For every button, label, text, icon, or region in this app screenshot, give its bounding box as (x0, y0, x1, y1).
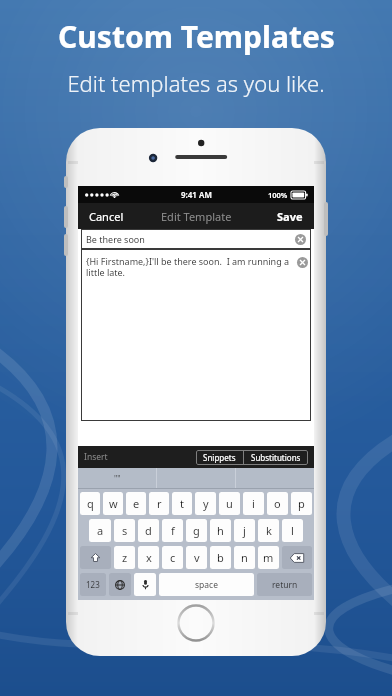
button[interactable]: Backspace (282, 546, 312, 569)
button[interactable]: k (258, 519, 279, 542)
button[interactable]: Be there soon (78, 229, 314, 249)
button[interactable]: j (234, 519, 255, 542)
staticText: z (122, 550, 128, 565)
staticText: Insert (84, 451, 108, 463)
button[interactable]: w (103, 492, 123, 515)
button[interactable]: i (243, 492, 264, 515)
staticText: Edit Template (161, 209, 232, 224)
button[interactable]: c (162, 546, 183, 569)
staticText: u (226, 496, 233, 511)
button[interactable]: return (257, 573, 312, 596)
button[interactable]: y (195, 492, 216, 515)
button[interactable]: Clear text (295, 234, 306, 245)
staticText: l (291, 523, 294, 538)
button[interactable]: n (234, 546, 255, 569)
button[interactable]: Home (177, 604, 215, 642)
staticText: b (217, 550, 224, 565)
staticText: h (217, 523, 224, 538)
staticText: {Hi Firstname,}I'll be there soon. I am … (86, 255, 301, 279)
button[interactable]: x (138, 546, 159, 569)
staticText: e (133, 496, 140, 511)
staticText: y (203, 496, 209, 511)
staticText: f (171, 523, 175, 538)
staticText: s (122, 523, 128, 538)
staticText: Custom Templates (58, 16, 335, 57)
staticText: a (97, 523, 104, 538)
staticText: Edit templates as you like. (67, 68, 325, 98)
button[interactable]: Cancel (78, 203, 135, 229)
button[interactable]: Substitutions (244, 450, 308, 465)
button[interactable]: {Hi Firstname,}I'll be there soon. I am … (78, 249, 314, 421)
staticText: v (194, 550, 200, 565)
staticText: j (243, 523, 246, 538)
button[interactable]: v (186, 546, 207, 569)
button[interactable]: f (162, 519, 183, 542)
staticText: Be there soon (86, 233, 145, 245)
staticText: d (145, 523, 152, 538)
staticText: g (193, 523, 200, 538)
button[interactable]: s (114, 519, 135, 542)
button[interactable]: r (149, 492, 169, 515)
button[interactable]: u (219, 492, 240, 515)
staticText: x (146, 550, 152, 565)
staticText: c (170, 550, 176, 565)
button[interactable]: space (159, 573, 254, 596)
button[interactable]: t (172, 492, 192, 515)
button[interactable]: z (114, 546, 135, 569)
staticText: "" (114, 473, 121, 484)
button[interactable]: Clear text (297, 257, 308, 268)
button[interactable]: "" (78, 468, 156, 488)
button[interactable]: Switch keyboard (109, 573, 131, 596)
staticText: 100% (268, 190, 288, 200)
button[interactable]: q (80, 492, 100, 515)
button[interactable]: Snippets (196, 450, 243, 465)
staticText: space (195, 579, 218, 591)
button[interactable]: Save (266, 203, 314, 229)
staticText: 9:41 AM (181, 189, 212, 200)
staticText: i (252, 496, 255, 511)
staticText: Substitutions (251, 452, 301, 463)
staticText: k (266, 523, 272, 538)
button[interactable]: m (258, 546, 279, 569)
button[interactable]: 123 (80, 573, 106, 596)
staticText: o (274, 496, 281, 511)
staticText: q (87, 496, 94, 511)
button[interactable]: o (267, 492, 288, 515)
button[interactable]: a (89, 519, 111, 542)
staticText: return (272, 579, 298, 591)
button[interactable]: l (282, 519, 303, 542)
button[interactable]: h (210, 519, 231, 542)
staticText: 123 (86, 579, 100, 590)
staticText: Save (277, 209, 303, 224)
button[interactable]: b (210, 546, 231, 569)
staticText: Snippets (203, 452, 236, 463)
button[interactable]: p (291, 492, 312, 515)
button[interactable]: d (138, 519, 159, 542)
staticText: m (263, 550, 274, 565)
staticText: Cancel (89, 209, 124, 224)
staticText: n (241, 550, 248, 565)
button[interactable]: Dictation (134, 573, 156, 596)
staticText: w (109, 496, 118, 511)
staticText: t (180, 496, 184, 511)
staticText: p (298, 496, 305, 511)
staticText: r (157, 496, 162, 511)
button[interactable]: Shift (80, 546, 111, 569)
button[interactable]: g (186, 519, 207, 542)
button[interactable]: e (126, 492, 146, 515)
